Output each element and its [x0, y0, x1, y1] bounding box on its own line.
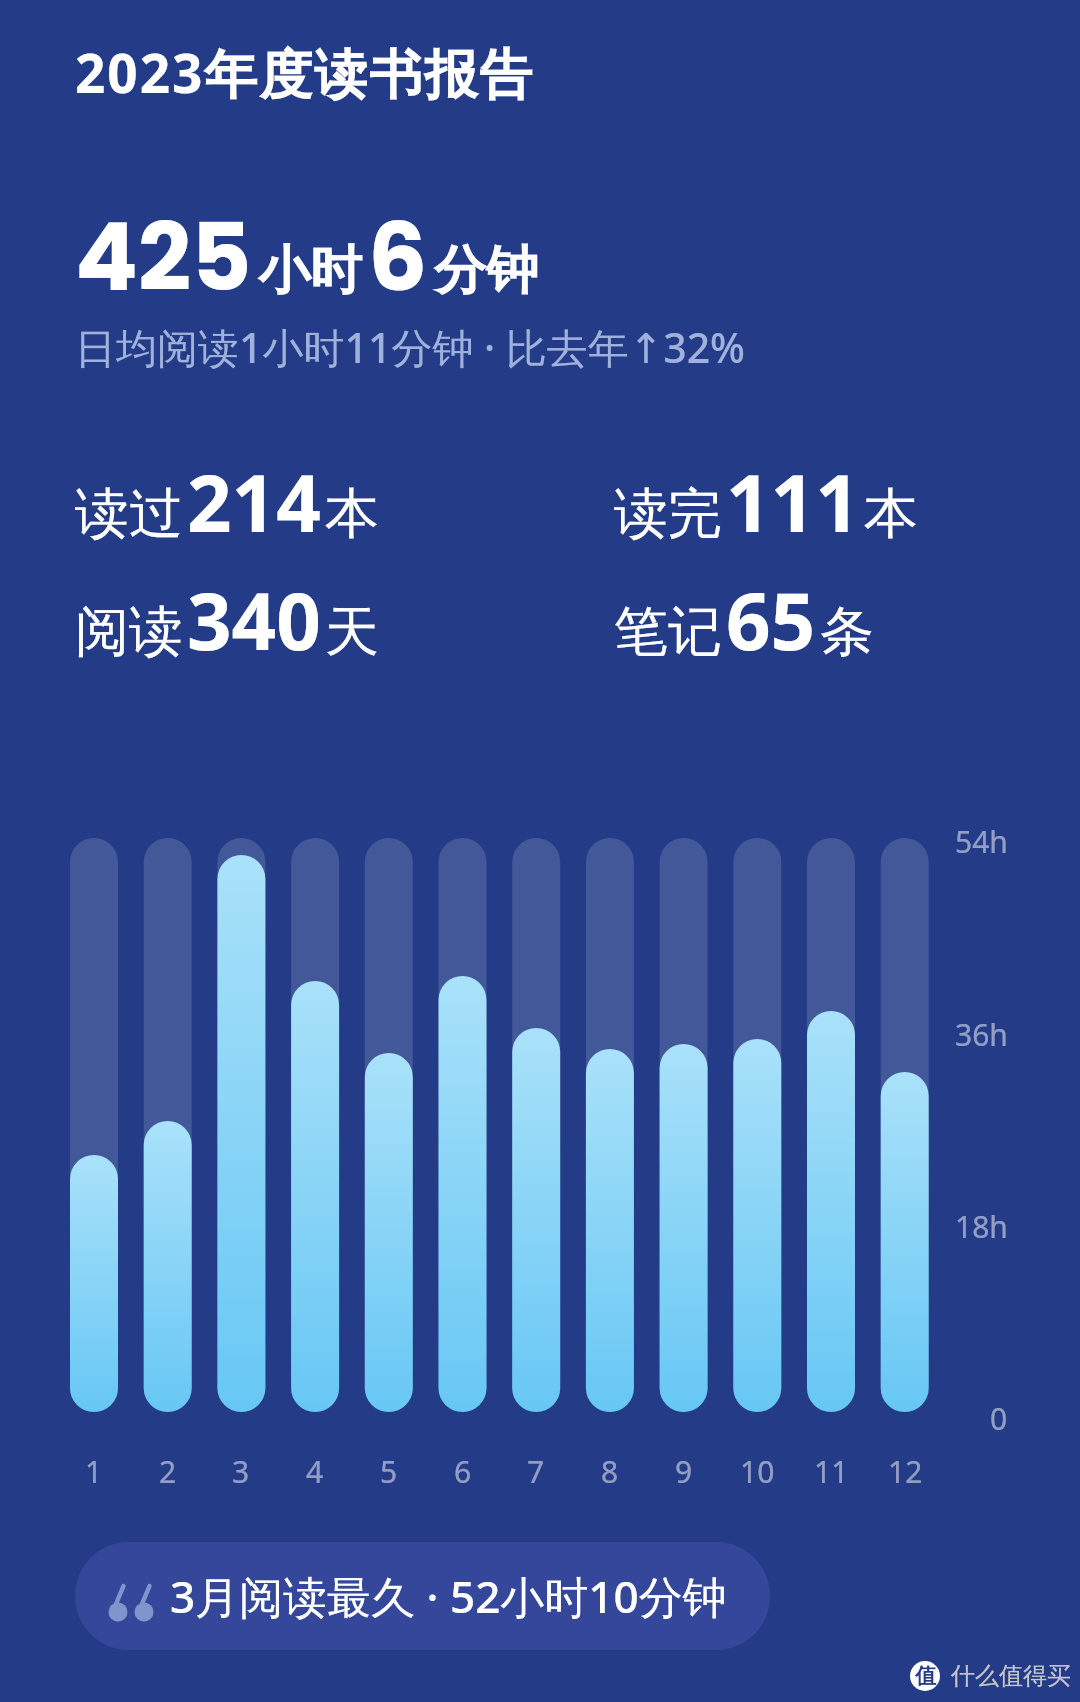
button[interactable]: 3月阅读最久 · 52小时10分钟 — [75, 1542, 770, 1650]
staticText: 340 — [187, 567, 321, 673]
staticText: 7 — [527, 1451, 545, 1485]
staticText: 小时 — [258, 238, 362, 304]
staticText: 425 — [75, 192, 252, 322]
staticText: 分钟 — [434, 238, 538, 304]
staticText: 3月阅读最久 · 52小时10分钟 — [170, 1566, 727, 1626]
staticText: 18h — [955, 1206, 1008, 1242]
staticText: 9 — [675, 1451, 693, 1485]
staticText: 2 — [159, 1451, 177, 1485]
staticText: 本 — [325, 480, 379, 548]
staticText: 11 — [814, 1451, 849, 1485]
staticText: 3 — [232, 1451, 250, 1485]
staticText: 111 — [726, 449, 860, 555]
staticText: 12 — [888, 1451, 923, 1485]
staticText: 6 — [368, 192, 428, 322]
staticText: 10 — [740, 1451, 775, 1485]
staticText: 54h — [955, 821, 1008, 857]
staticText: 5 — [380, 1451, 398, 1485]
staticText: 2023年度读书报告 — [75, 36, 535, 108]
staticText: 1 — [85, 1451, 103, 1485]
staticText: 阅读 — [75, 598, 183, 666]
staticText: 本 — [864, 480, 918, 548]
staticText: 4 — [306, 1451, 324, 1485]
staticText: 什么值得买 — [951, 1661, 1071, 1691]
staticText: 0 — [990, 1398, 1008, 1434]
staticText: 笔记 — [614, 598, 722, 666]
staticText: 65 — [726, 567, 816, 673]
staticText: 6 — [454, 1451, 472, 1485]
staticText: 读完 — [614, 480, 722, 548]
staticText: 214 — [187, 449, 321, 555]
staticText: 读过 — [75, 480, 183, 548]
staticText: 8 — [601, 1451, 619, 1485]
staticText: 天 — [325, 598, 379, 666]
staticText: 值 — [915, 1663, 936, 1689]
staticText: 日均阅读1小时11分钟 · 比去年↑32% — [75, 319, 746, 375]
staticText: 条 — [820, 598, 874, 666]
staticText: 36h — [955, 1014, 1008, 1050]
